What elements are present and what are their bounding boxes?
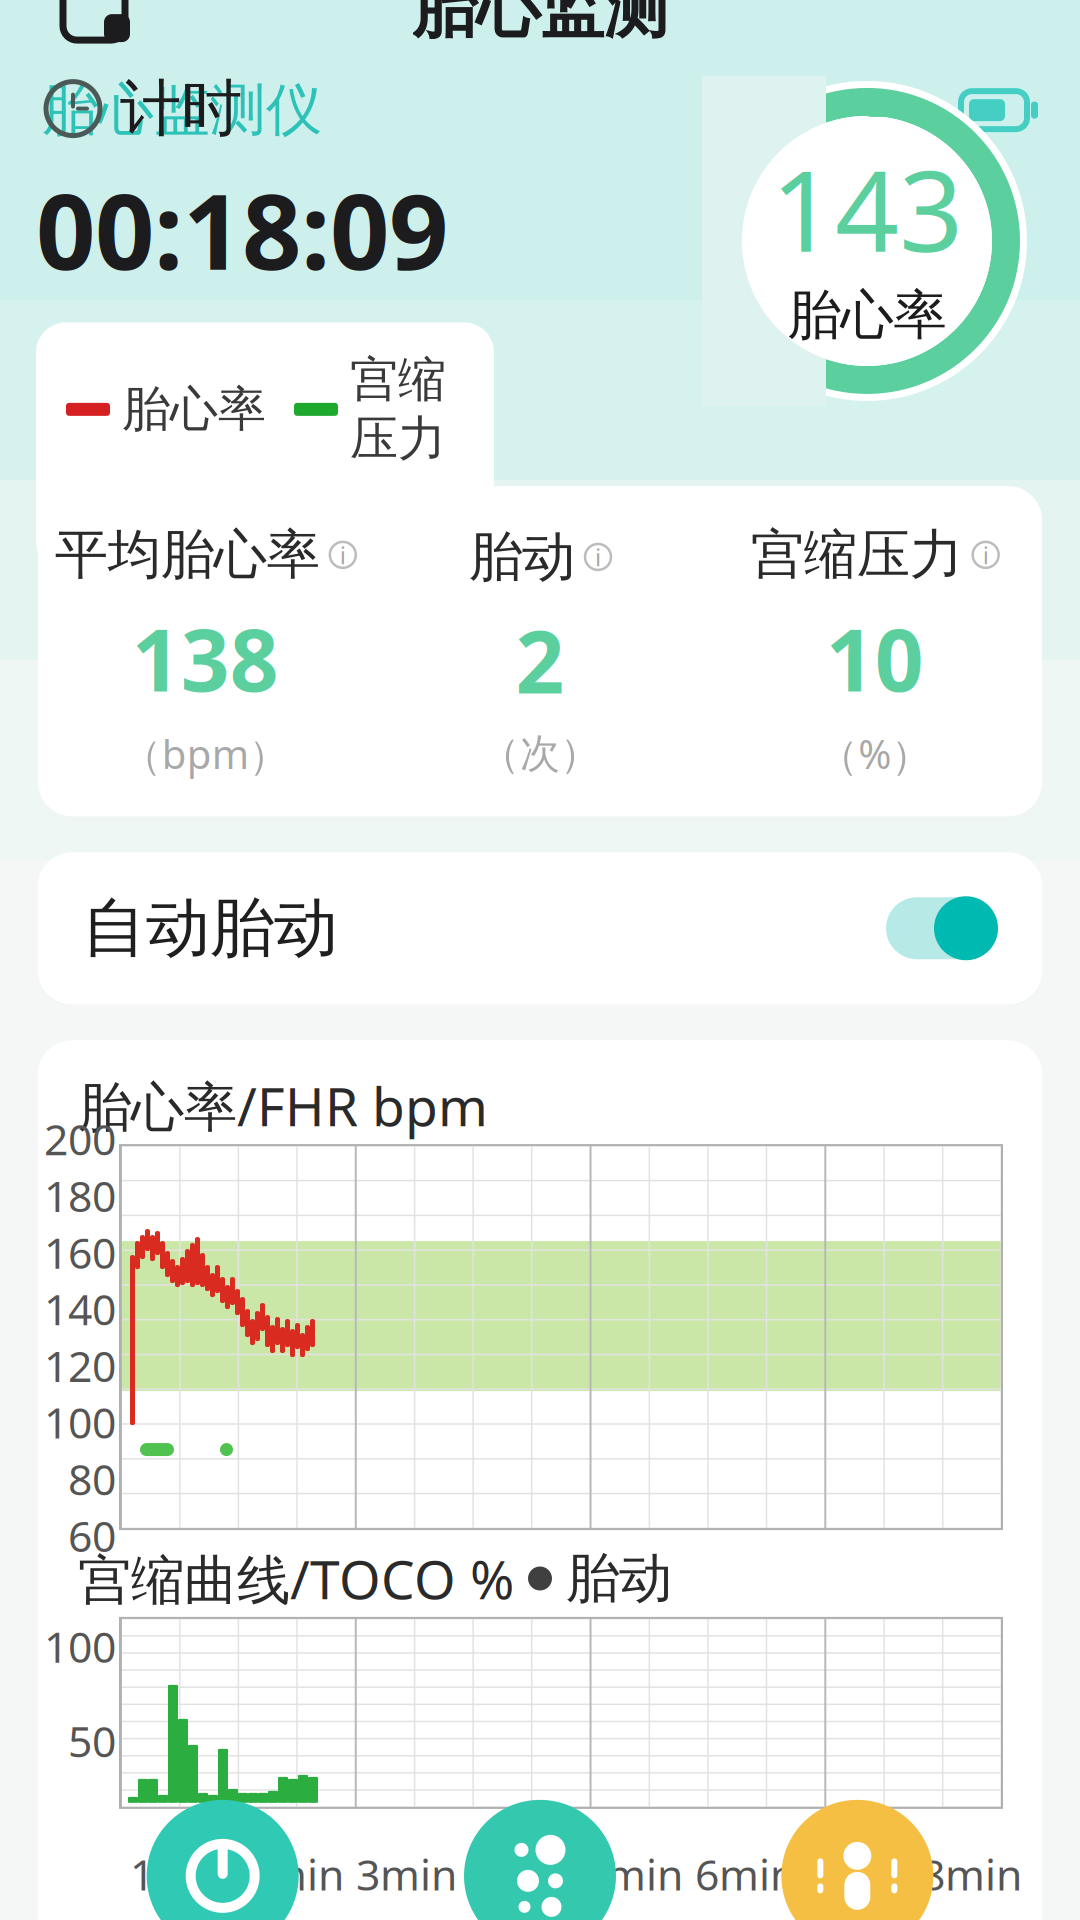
staticText: 10 xyxy=(826,602,924,715)
staticText: 50 xyxy=(68,1712,116,1769)
staticText: i xyxy=(340,539,346,571)
staticText: 胎心率/FHR bpm xyxy=(78,1070,488,1141)
staticText: （bpm） xyxy=(122,727,289,780)
staticText: 胎心监测 xyxy=(412,0,668,48)
staticText: 计时 xyxy=(120,71,242,146)
staticText: 120 xyxy=(44,1337,116,1394)
staticText: 180 xyxy=(44,1167,116,1224)
button[interactable]: 画中画 xyxy=(44,0,144,57)
staticText: 138 xyxy=(132,602,279,715)
staticText: 自动胎动 xyxy=(82,889,338,967)
staticText: 胎动点 xyxy=(122,484,266,543)
staticText: 7min xyxy=(808,1846,909,1902)
staticText: 143 xyxy=(771,134,963,282)
staticText: （次） xyxy=(480,729,600,778)
staticText: 100 xyxy=(44,1394,116,1450)
staticText: 80 xyxy=(68,1450,116,1507)
staticText: 胎动 xyxy=(469,524,575,590)
staticText: 胎心率 xyxy=(787,283,946,348)
staticText: 胎心监测仪 xyxy=(42,76,322,144)
staticText: 160 xyxy=(44,1224,116,1280)
staticText: 宫缩压力 xyxy=(751,522,963,588)
staticText: 5min xyxy=(582,1846,683,1902)
staticText: 2 xyxy=(515,604,564,717)
staticText: 3min xyxy=(356,1846,457,1902)
staticText: 140 xyxy=(44,1280,116,1337)
staticText: 4min xyxy=(469,1846,570,1902)
staticText: （%） xyxy=(818,727,931,780)
button[interactable]: 胎动计数 xyxy=(699,1800,1016,1920)
staticText: 1min xyxy=(130,1846,231,1902)
staticText: i xyxy=(595,541,601,573)
staticText: i xyxy=(983,539,989,571)
staticText: 平均胎心率 xyxy=(55,522,320,588)
staticText: 宫缩曲线/TOCO % xyxy=(78,1543,514,1614)
staticText: 宫缩压力 xyxy=(350,350,446,468)
staticText: 2min xyxy=(243,1846,344,1902)
staticText: 60 xyxy=(68,1507,116,1564)
button[interactable]: 自动胎动 xyxy=(38,852,1042,1004)
staticText: 200 xyxy=(44,1110,116,1167)
button[interactable]: 宫缩复位 xyxy=(381,1800,699,1920)
button[interactable]: 停止监测 xyxy=(64,1800,381,1920)
staticText: 胎心率 xyxy=(122,380,266,439)
staticText: 100 xyxy=(44,1618,116,1675)
staticText: 6min xyxy=(695,1846,796,1902)
staticText: 8min xyxy=(921,1846,1022,1902)
staticText: 胎动 xyxy=(566,1546,672,1611)
staticText: 00:18:09 xyxy=(36,160,448,298)
